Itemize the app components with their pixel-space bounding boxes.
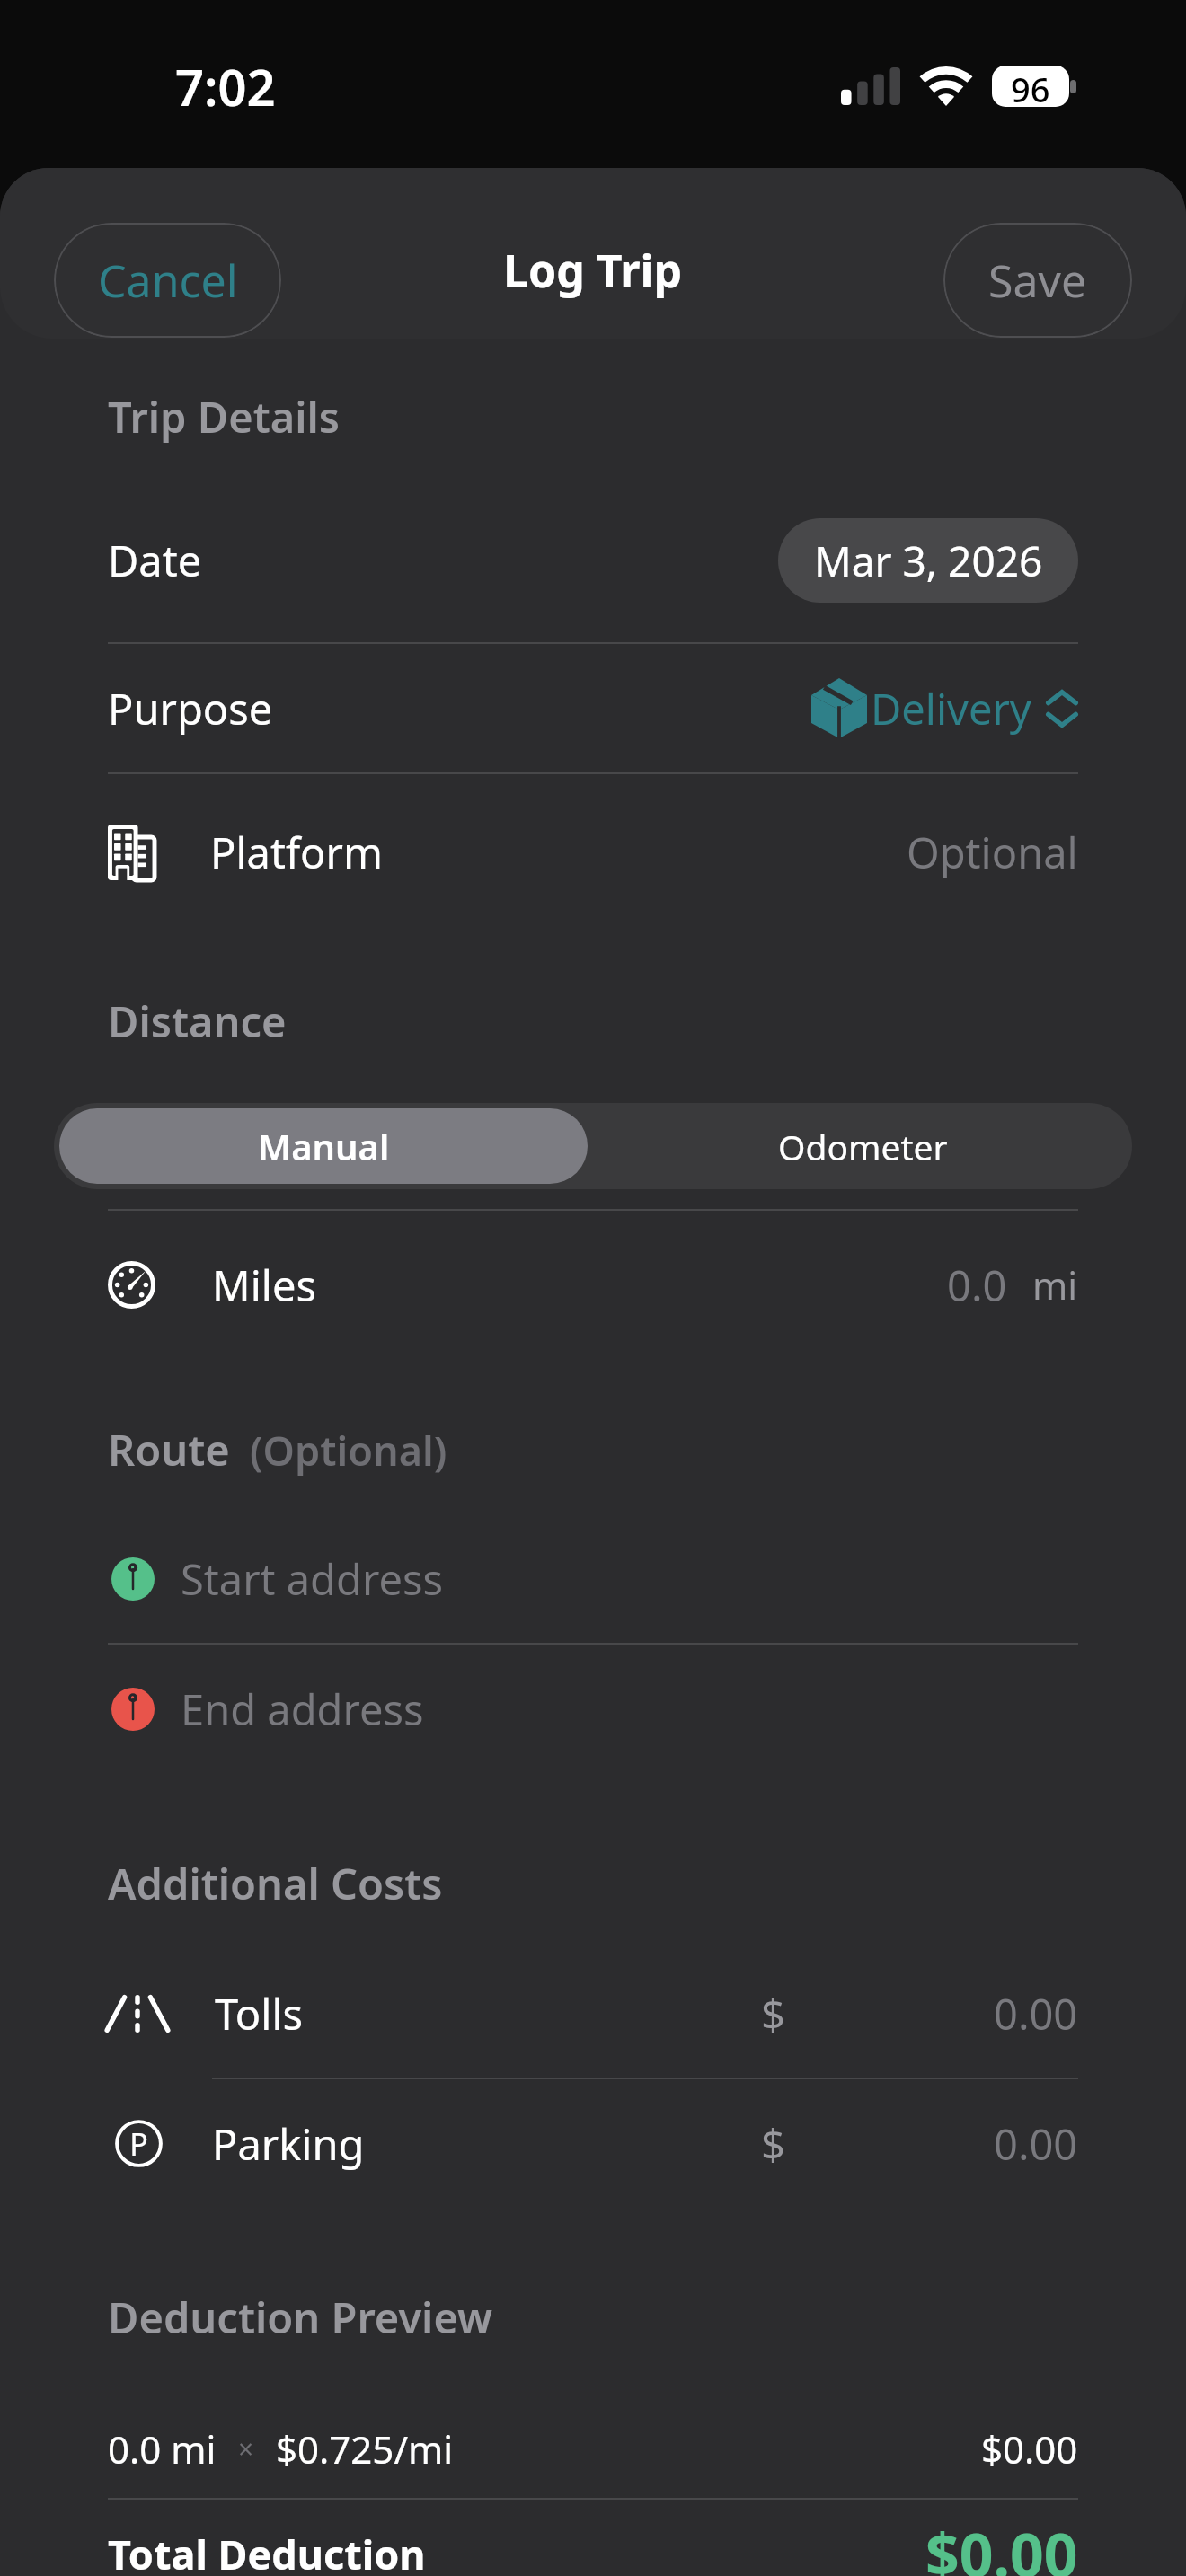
button[interactable]: Tolls (0, 1949, 1186, 2078)
staticText: Manual (258, 1122, 390, 1170)
staticText: P (129, 2123, 148, 2165)
staticText: Trip Details (108, 388, 340, 446)
button[interactable]: Miles (0, 1211, 1186, 1359)
staticText: 0.0 mi (108, 2423, 217, 2475)
staticText: Cancel (98, 250, 238, 311)
staticText: Start address (181, 1550, 443, 1608)
button[interactable]: Cancel (54, 223, 281, 338)
staticText: Purpose (108, 680, 273, 737)
staticText: Total Deduction (108, 2527, 426, 2576)
button[interactable]: Date (0, 478, 1186, 642)
staticText: End address (181, 1681, 424, 1738)
staticText: Optional (907, 824, 1078, 881)
staticText: Save (988, 250, 1087, 311)
staticText: Additional Costs (108, 1855, 443, 1912)
staticText: $ (761, 2115, 785, 2173)
staticText: Platform (210, 824, 383, 881)
staticText: Mar 3, 2026 (814, 533, 1043, 589)
staticText: Log Trip (503, 240, 683, 301)
button[interactable]: Start address (0, 1514, 1186, 1643)
staticText: $0.00 (925, 2513, 1078, 2576)
button[interactable]: Platform (0, 774, 1186, 930)
button[interactable]: Save (943, 223, 1132, 338)
staticText: Delivery (871, 680, 1031, 737)
staticText: Date (108, 532, 202, 589)
staticText: $ (761, 1985, 785, 2042)
button[interactable]: Purpose (0, 644, 1186, 772)
staticText: $0.725/mi (276, 2423, 454, 2475)
staticText: Parking (212, 2115, 365, 2173)
staticText: × (238, 2430, 254, 2467)
staticText: Route (108, 1421, 230, 1478)
staticText: Distance (108, 992, 287, 1050)
staticText: (Optional) (250, 1423, 447, 1478)
staticText: Miles (212, 1257, 316, 1314)
staticText: Deduction Preview (108, 2289, 492, 2346)
staticText: mi (1032, 1259, 1078, 1310)
staticText: 0.0 (947, 1257, 1007, 1314)
button[interactable]: Manual (59, 1108, 588, 1184)
button[interactable]: End address (0, 1645, 1186, 1773)
staticText: 7:02 (175, 52, 276, 120)
staticText: Odometer (778, 1123, 948, 1170)
staticText: Tolls (215, 1985, 304, 2042)
staticText: 96 (1011, 66, 1050, 107)
staticText: 0.00 (994, 1985, 1078, 2042)
staticText: 0.00 (994, 2115, 1078, 2173)
button[interactable]: P (0, 2079, 1186, 2208)
staticText: $0.00 (981, 2423, 1078, 2475)
button[interactable]: Odometer (593, 1103, 1132, 1189)
